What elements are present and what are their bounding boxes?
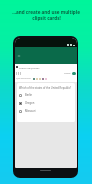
staticText: Missouri <box>25 109 36 113</box>
staticText: Online <box>64 72 71 75</box>
staticText: Berlin <box>25 93 33 97</box>
staticText: clipsit cards! <box>32 15 61 21</box>
button[interactable]: Missouri <box>19 109 75 113</box>
staticText: ...and create and use multiple <box>12 9 80 15</box>
button[interactable]: Online toggle <box>72 72 76 75</box>
staticText: Quiz generator <box>16 77 31 80</box>
button[interactable]: Oregon <box>19 101 75 105</box>
staticText: Which of the states of the United Republ… <box>19 86 72 90</box>
button[interactable]: Berlin <box>19 93 75 97</box>
button[interactable]: Back <box>17 54 21 58</box>
staticText: Oregon <box>25 101 35 105</box>
staticText: Clipsit Me Quizzes <box>19 66 40 69</box>
button[interactable]: Clipsit Me Quizzes <box>16 64 77 70</box>
